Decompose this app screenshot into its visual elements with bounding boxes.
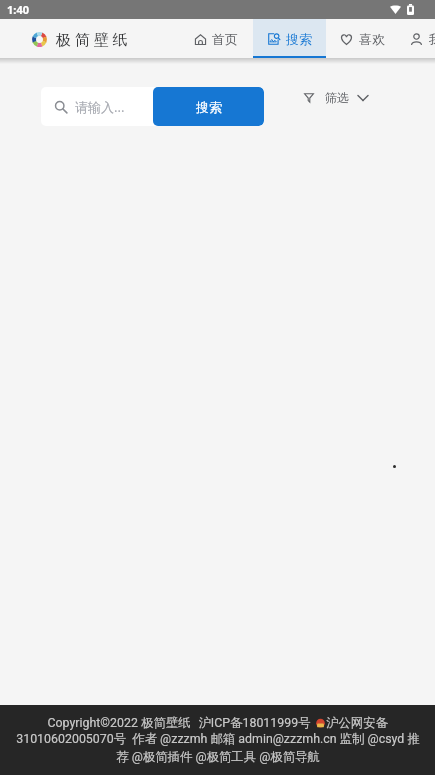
button[interactable]: 首页 [180,19,253,58]
button[interactable]: 请输入... [41,98,153,116]
staticText: 首页 [212,31,238,47]
staticText: 喜欢 [359,31,385,47]
staticText: Copyright©2022 极简壁纸 [47,715,191,731]
button[interactable]: 我 [399,19,435,58]
staticText: 搜索 [196,99,222,115]
staticText: 搜索 [286,31,312,47]
staticText: 沪公网安备 [326,715,388,731]
staticText: 1:40 [7,2,29,17]
staticText: 极 简 壁 纸 [56,29,128,49]
button[interactable]: 搜索 [153,87,264,126]
staticText: 筛选 [325,90,349,105]
staticText: 我 [429,31,435,47]
button[interactable]: 喜欢 [326,19,399,58]
button[interactable]: 搜索 [253,19,326,58]
staticText: 请输入... [75,98,125,116]
staticText: 沪ICP备18011999号 [198,715,311,731]
button[interactable]: 筛选 [304,90,369,105]
staticText: 31010602005070号 作者 @zzzmh 邮箱 admin@zzzmh… [16,731,420,765]
